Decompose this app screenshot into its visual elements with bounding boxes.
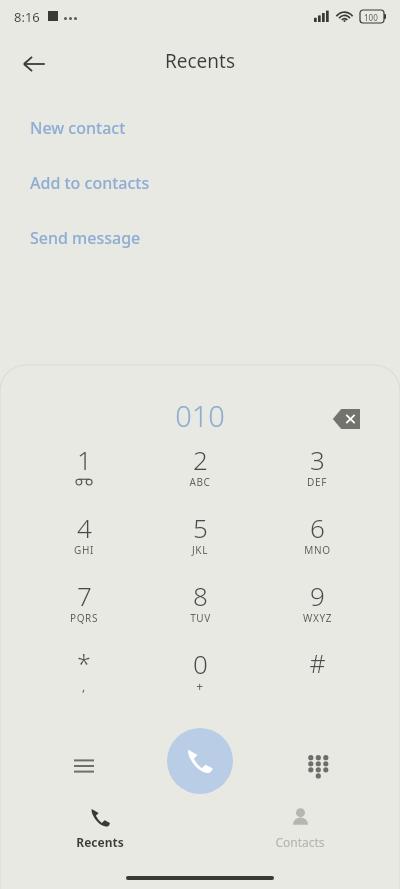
button[interactable]: More options xyxy=(56,738,112,794)
staticText: , xyxy=(82,678,86,694)
button[interactable]: Add to contacts xyxy=(16,165,400,201)
staticText: 1 xyxy=(77,442,92,477)
staticText: 2 xyxy=(193,442,208,477)
staticText: New contact xyxy=(30,117,126,139)
staticText: TUV xyxy=(190,611,211,625)
button[interactable]: 0 xyxy=(160,646,240,704)
button[interactable]: Contacts xyxy=(245,799,355,857)
staticText: WXYZ xyxy=(303,611,332,625)
button[interactable]: 9 xyxy=(277,578,357,636)
staticText: ABC xyxy=(189,475,211,489)
button[interactable]: Keypad xyxy=(290,738,346,794)
button[interactable]: Call xyxy=(167,728,233,794)
button[interactable]: 7 xyxy=(44,578,124,636)
staticText: 8 xyxy=(193,578,208,613)
staticText: 010 xyxy=(0,396,400,435)
button[interactable]: # xyxy=(277,646,357,704)
button[interactable]: 1 xyxy=(44,442,124,500)
staticText: PQRS xyxy=(70,611,98,625)
staticText: 9 xyxy=(310,578,325,613)
staticText: DEF xyxy=(307,475,327,489)
staticText: GHI xyxy=(74,543,94,557)
staticText: Recents xyxy=(0,48,400,74)
button[interactable]: Send message xyxy=(16,220,400,256)
button[interactable]: 5 xyxy=(160,510,240,568)
button[interactable]: 6 xyxy=(277,510,357,568)
button[interactable]: New contact xyxy=(16,110,400,146)
staticText: MNO xyxy=(304,543,331,557)
button[interactable]: 2 xyxy=(160,442,240,500)
staticText: Add to contacts xyxy=(30,172,150,194)
button[interactable]: Recents xyxy=(45,799,155,857)
staticText: + xyxy=(196,678,204,694)
staticText: 8:16 xyxy=(14,8,40,26)
staticText: Send message xyxy=(30,227,141,249)
staticText: 6 xyxy=(310,510,325,545)
staticText: 7 xyxy=(77,578,92,613)
button[interactable]: 3 xyxy=(277,442,357,500)
button[interactable]: 8 xyxy=(160,578,240,636)
staticText: 0 xyxy=(193,646,208,681)
staticText: Contacts xyxy=(275,834,325,850)
button[interactable]: 4 xyxy=(44,510,124,568)
staticText: 3 xyxy=(310,442,325,477)
button[interactable]: * xyxy=(44,646,124,704)
staticText: * xyxy=(77,646,91,680)
button[interactable]: Back xyxy=(10,40,58,88)
staticText: Recents xyxy=(76,834,124,850)
staticText: JKL xyxy=(192,543,208,557)
staticText: 5 xyxy=(193,510,208,545)
staticText: 100 xyxy=(364,12,378,23)
button[interactable]: Backspace xyxy=(322,395,370,443)
staticText: # xyxy=(309,646,326,680)
staticText: 4 xyxy=(77,510,92,545)
